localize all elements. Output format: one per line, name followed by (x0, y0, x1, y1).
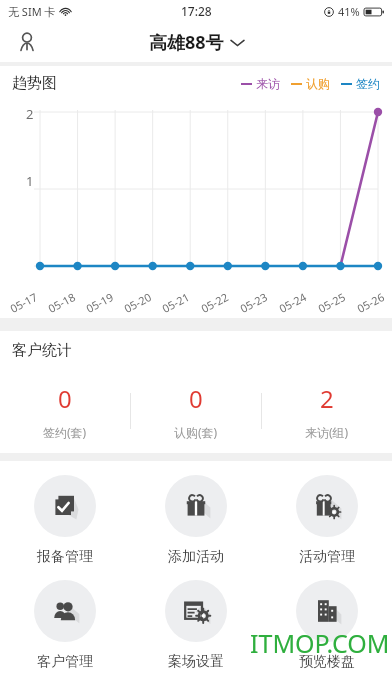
staticText: 无 SIM 卡 (8, 4, 56, 19)
staticText: 05-20 (121, 289, 154, 316)
staticText: 预览楼盘 (299, 653, 355, 671)
staticText: 认购(套) (174, 424, 218, 440)
staticText: 05-24 (276, 289, 309, 316)
staticText: 05-22 (198, 289, 231, 316)
staticText: 05-23 (237, 289, 270, 316)
staticText: 案场设置 (168, 653, 224, 671)
staticText: 05-17 (7, 289, 40, 316)
staticText: 05-18 (45, 289, 78, 316)
staticText: 添加活动 (168, 548, 224, 566)
staticText: 05-26 (354, 289, 387, 316)
button[interactable]: 高雄88号 (143, 28, 250, 57)
staticText: 1 (26, 172, 34, 190)
button[interactable]: 客户管理 (0, 580, 130, 671)
staticText: 趋势图 (12, 74, 57, 93)
staticText: 签约(套) (43, 424, 87, 440)
button[interactable]: Account (10, 25, 44, 59)
staticText: ITMOP.COM (250, 626, 390, 660)
staticText: 报备管理 (37, 548, 93, 566)
button[interactable]: 案场设置 (130, 580, 261, 671)
staticText: 客户管理 (37, 653, 93, 671)
button[interactable]: 添加活动 (130, 475, 261, 566)
staticText: 2 (26, 105, 34, 123)
staticText: 0 (189, 382, 203, 415)
staticText: 来访(组) (305, 424, 349, 440)
button[interactable]: 0 (131, 369, 261, 453)
button[interactable]: 来访 (241, 76, 280, 91)
staticText: 05-19 (83, 289, 116, 316)
staticText: 客户统计 (12, 341, 72, 360)
button[interactable]: 认购 (291, 76, 330, 91)
staticText: 认购 (306, 76, 330, 91)
staticText: 05-21 (159, 289, 192, 316)
button[interactable]: 预览楼盘 (261, 580, 392, 671)
staticText: 0 (58, 382, 72, 415)
staticText: 17:28 (181, 3, 212, 19)
staticText: 2 (320, 382, 334, 415)
staticText: 高雄88号 (149, 30, 224, 55)
staticText: 41% (338, 4, 360, 19)
staticText: 活动管理 (299, 548, 355, 566)
staticText: 签约 (356, 76, 380, 91)
button[interactable]: 报备管理 (0, 475, 130, 566)
button[interactable]: 2 (262, 369, 392, 453)
staticText: 来访 (256, 76, 280, 91)
staticText: 05-25 (315, 289, 348, 316)
button[interactable]: 活动管理 (261, 475, 392, 566)
button[interactable]: 签约 (341, 76, 380, 91)
button[interactable]: 0 (0, 369, 130, 453)
